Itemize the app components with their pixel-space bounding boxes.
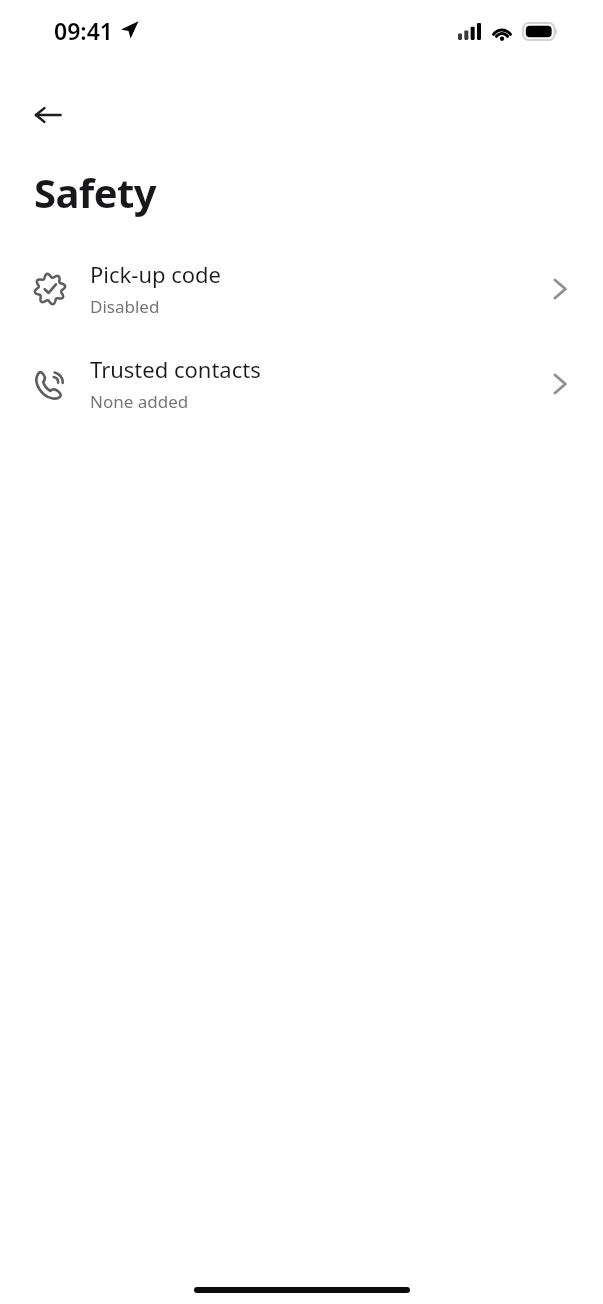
button[interactable]: Trusted contacts bbox=[0, 336, 603, 431]
staticText: Pick-up code bbox=[90, 259, 222, 289]
staticText: Safety bbox=[34, 165, 156, 219]
button[interactable]: Back bbox=[22, 89, 74, 141]
staticText: None added bbox=[90, 390, 189, 413]
staticText: 09:41 bbox=[54, 15, 113, 46]
button[interactable]: Pick-up code bbox=[0, 241, 603, 336]
staticText: Disabled bbox=[90, 295, 160, 318]
staticText: Trusted contacts bbox=[90, 354, 261, 384]
